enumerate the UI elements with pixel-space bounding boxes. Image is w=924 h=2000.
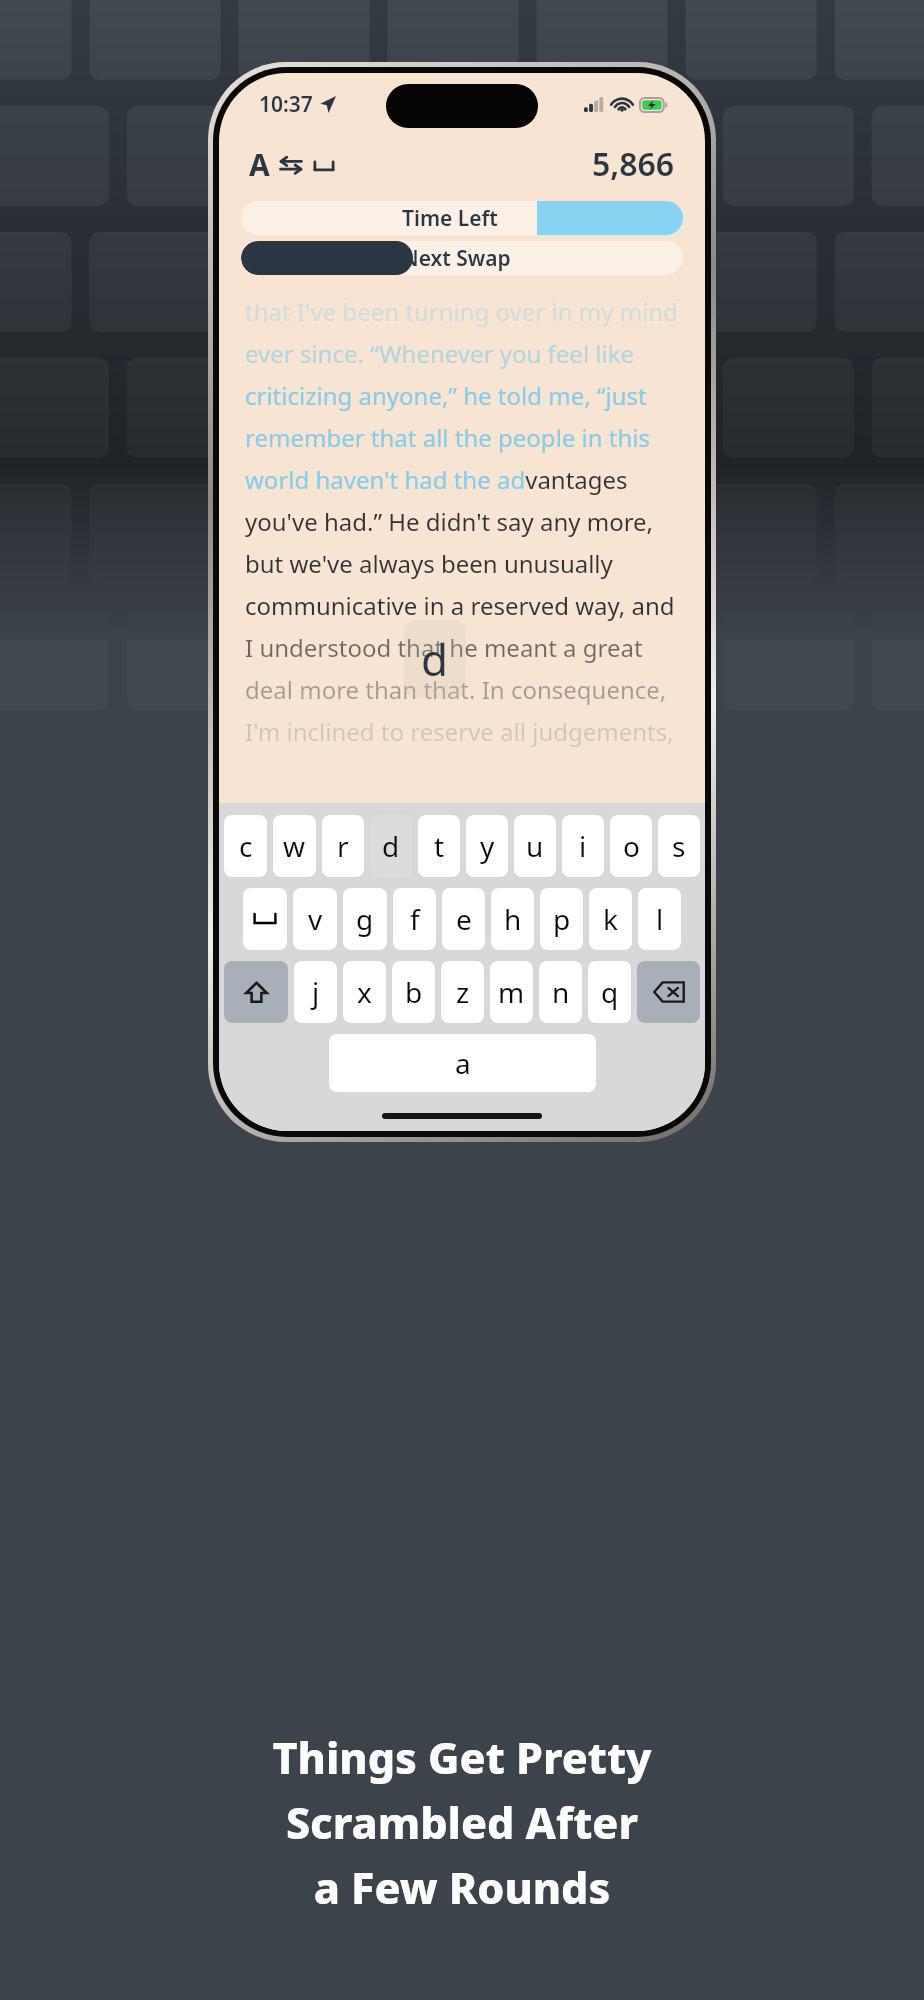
staticText: Scrambled After xyxy=(0,1793,924,1852)
staticText: Things Get Pretty xyxy=(0,1728,924,1787)
staticText: ever since. “Whenever you feel like xyxy=(245,337,679,379)
button[interactable]: 5,866 xyxy=(588,138,679,190)
button[interactable]: n xyxy=(539,961,582,1023)
button[interactable]: m xyxy=(490,961,533,1023)
staticText: c xyxy=(239,827,253,865)
button[interactable]: v xyxy=(293,888,337,950)
button[interactable]: q xyxy=(588,961,631,1023)
staticText: communicative in a reserved way, and xyxy=(245,589,679,631)
staticText: but we've always been unusually xyxy=(245,547,679,589)
staticText: that I've been turning over in my mind xyxy=(245,295,679,337)
button[interactable]: d xyxy=(370,815,412,877)
staticText: l xyxy=(656,900,664,938)
staticText: a Few Rounds xyxy=(0,1858,924,1917)
button[interactable]: f xyxy=(393,888,436,950)
staticText: 10:37 xyxy=(259,90,313,119)
button[interactable]: u xyxy=(514,815,556,877)
button[interactable]: a xyxy=(329,1034,596,1092)
other: Space xyxy=(312,154,336,176)
staticText: u xyxy=(526,827,544,865)
staticText: y xyxy=(480,827,495,865)
staticText: Next Swap xyxy=(402,244,511,273)
staticText: k xyxy=(603,900,618,938)
staticText: r xyxy=(337,827,349,865)
button[interactable]: Shift xyxy=(224,961,288,1023)
button[interactable]: k xyxy=(589,888,632,950)
staticText: e xyxy=(456,900,472,938)
button[interactable]: Time Left xyxy=(241,201,683,235)
staticText: I understood that he meant a great xyxy=(245,631,679,673)
staticText: deal more than that. In consequence, xyxy=(245,673,679,715)
staticText: world haven't had the advantages that xyxy=(245,463,679,505)
staticText: n xyxy=(552,973,570,1011)
button[interactable]: r xyxy=(322,815,364,877)
staticText: d xyxy=(421,629,449,689)
staticText: x xyxy=(357,973,372,1011)
staticText: s xyxy=(672,827,686,865)
other: Swap letters xyxy=(278,152,304,178)
staticText: o xyxy=(623,827,640,865)
staticText: h xyxy=(504,900,522,938)
button[interactable] xyxy=(243,888,287,950)
staticText: I'm inclined to reserve all judgements, xyxy=(245,715,679,757)
button[interactable]: p xyxy=(540,888,583,950)
staticText: w xyxy=(283,827,306,865)
staticText: t xyxy=(434,827,445,865)
button[interactable]: l xyxy=(638,888,681,950)
staticText: a xyxy=(455,1044,471,1082)
staticText: i xyxy=(579,827,587,865)
button[interactable]: A xyxy=(245,140,340,189)
staticText: b xyxy=(405,973,423,1011)
staticText: j xyxy=(312,973,320,1011)
staticText: you've had.” He didn't say any more, xyxy=(245,505,679,547)
button[interactable]: h xyxy=(491,888,534,950)
staticText: z xyxy=(456,973,470,1011)
button[interactable]: x xyxy=(343,961,386,1023)
staticText: d xyxy=(382,827,400,865)
staticText: f xyxy=(410,900,420,938)
button[interactable]: Next Swap xyxy=(241,241,683,275)
button[interactable]: w xyxy=(273,815,316,877)
staticText: criticizing anyone,” he told me, “just xyxy=(245,379,679,421)
staticText: g xyxy=(356,900,374,938)
button[interactable]: g xyxy=(343,888,387,950)
button[interactable]: s xyxy=(658,815,700,877)
button[interactable]: i xyxy=(562,815,604,877)
button[interactable]: c xyxy=(224,815,267,877)
staticText: v xyxy=(308,900,323,938)
button[interactable]: t xyxy=(418,815,460,877)
button[interactable]: b xyxy=(392,961,435,1023)
staticText: Time Left xyxy=(402,204,498,233)
staticText: m xyxy=(498,973,525,1011)
button[interactable]: z xyxy=(441,961,484,1023)
button[interactable]: Backspace xyxy=(637,961,700,1023)
button[interactable]: y xyxy=(466,815,508,877)
staticText: remember that all the people in this xyxy=(245,421,679,463)
staticText: q xyxy=(601,973,619,1011)
staticText: p xyxy=(553,900,571,938)
staticText: A xyxy=(249,144,270,185)
button[interactable]: o xyxy=(610,815,652,877)
button[interactable]: j xyxy=(294,961,337,1023)
button[interactable]: e xyxy=(442,888,485,950)
